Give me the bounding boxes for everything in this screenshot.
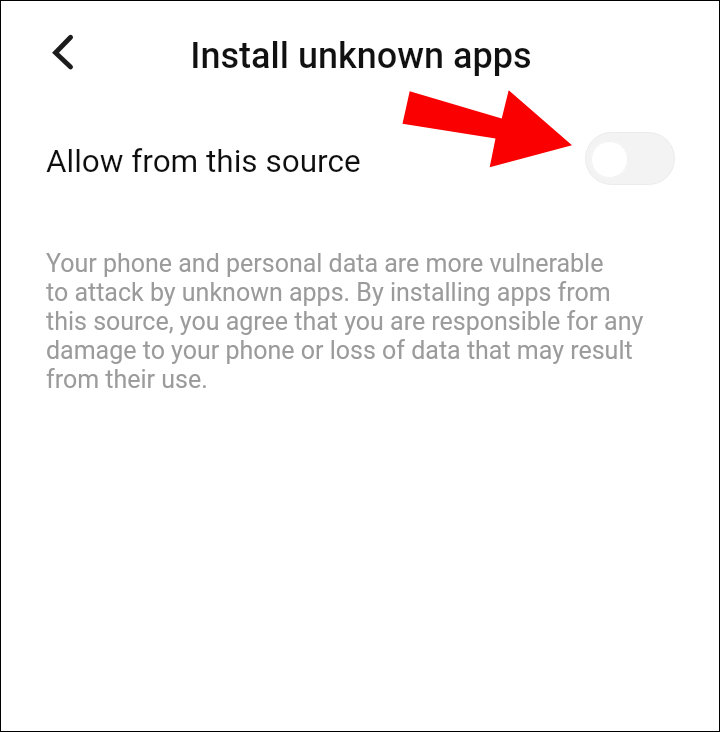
- staticText: Allow from this source: [46, 143, 361, 180]
- button[interactable]: Allow from this source: [0, 115, 720, 205]
- staticText: Install unknown apps: [1, 35, 720, 732]
- button[interactable]: Navigate up: [22, 14, 98, 90]
- button[interactable]: Allow from this source toggle, off: [585, 132, 675, 185]
- staticText: Your phone and personal data are more vu…: [46, 249, 644, 394]
